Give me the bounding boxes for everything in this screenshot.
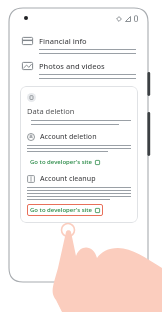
staticText: Financial info [39,36,87,46]
button[interactable]: Photos and videos [9,59,148,81]
staticText: Go to developer's site [30,158,92,166]
button[interactable]: Go to developer's site [27,156,103,168]
staticText: Account cleanup [40,174,96,184]
staticText: Photos and videos [39,61,105,71]
button[interactable]: Financial info [9,34,148,56]
staticText: Account deletion [40,132,97,142]
button[interactable]: Go to developer's site [27,204,103,216]
staticText: Go to developer's site [30,206,92,214]
staticText: Data deletion [27,106,75,116]
